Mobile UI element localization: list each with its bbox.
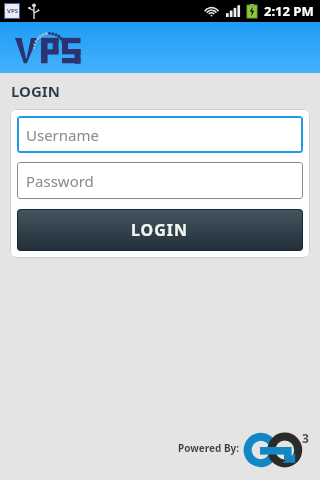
staticText: LOGIN <box>11 81 60 101</box>
staticText: Powered By: <box>178 441 240 455</box>
staticText: 3 <box>302 430 309 446</box>
staticText: Password <box>26 171 94 191</box>
button[interactable]: Username <box>17 116 303 153</box>
button[interactable]: GO3 <box>244 428 310 468</box>
button[interactable]: Password <box>17 162 303 199</box>
staticText: VPS <box>7 7 18 15</box>
button[interactable]: LOGIN <box>17 209 303 251</box>
staticText: Username <box>26 125 99 145</box>
staticText: LOGIN <box>131 219 189 241</box>
staticText: 2:12 PM <box>264 2 314 20</box>
